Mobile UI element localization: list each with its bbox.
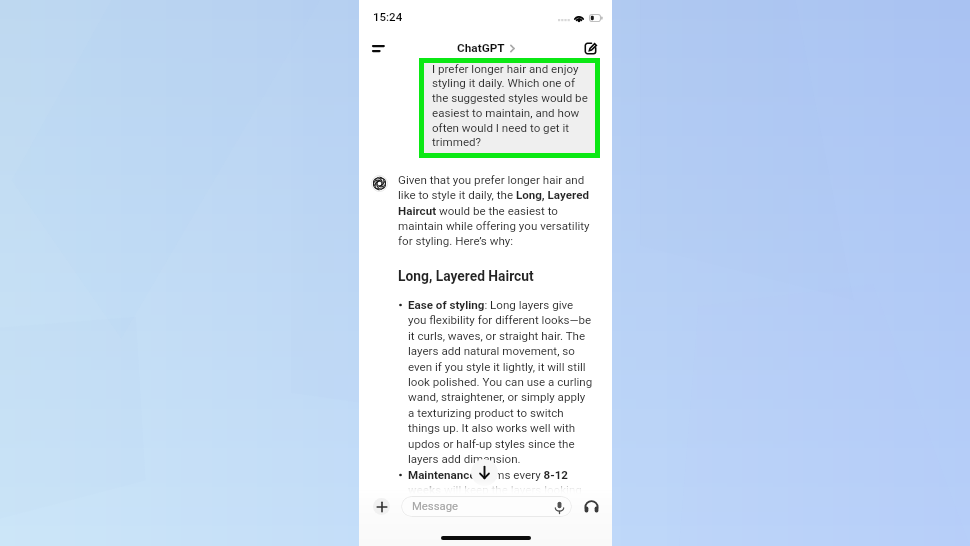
staticText: like to style it daily, the Long, Layere… — [398, 188, 589, 202]
staticText: styling it daily. Which one of — [432, 76, 575, 90]
staticText: Given that you prefer longer hair and — [398, 173, 585, 187]
staticText: look polished. You can use a curling — [408, 375, 593, 389]
staticText: Long, Layered Haircut — [398, 268, 534, 284]
staticText: Message — [412, 500, 458, 513]
staticText: often would I need to get it — [432, 121, 570, 135]
staticText: even if you style it lightly, it will st… — [408, 360, 586, 374]
staticText: it curls, waves, or straight hair. The — [408, 329, 586, 343]
staticText: fresh and — [408, 498, 457, 512]
staticText: layers add dimension. — [408, 452, 521, 466]
button[interactable]: Dictate message — [552, 500, 566, 514]
staticText: ChatGPT — [457, 41, 505, 55]
button[interactable]: Scroll to bottom — [471, 459, 498, 486]
staticText: for styling. Here’s why: — [398, 234, 514, 248]
staticText: the suggested styles would be — [432, 91, 588, 105]
staticText: easiest to maintain, and how — [432, 106, 580, 120]
staticText: maintain while offering you versatility — [398, 219, 590, 233]
staticText: trimmed? — [432, 135, 482, 149]
staticText: I prefer longer hair and enjoy — [432, 62, 579, 76]
staticText: 15:24 — [373, 10, 403, 23]
staticText: weeks will keep the layers looking — [408, 483, 582, 497]
staticText: Maintenance: Trims every 8-12 — [408, 468, 568, 482]
button[interactable]: Open sidebar menu — [364, 36, 391, 61]
staticText: Haircut would be the easiest to — [398, 204, 558, 218]
staticText: layers add natural movement, so — [408, 344, 575, 358]
button[interactable]: ChatGPT — [457, 41, 515, 55]
button[interactable]: Voice mode — [582, 497, 601, 516]
button[interactable]: Message — [401, 496, 572, 517]
button[interactable]: Add attachment — [373, 498, 390, 515]
button[interactable] — [424, 63, 595, 153]
staticText: updos or half-up styles since the — [408, 437, 575, 451]
staticText: Ease of styling: Long layers give — [408, 298, 574, 312]
button[interactable]: New chat — [577, 35, 604, 61]
staticText: a texturizing product to switch — [408, 406, 564, 420]
staticText: you flexibility for different looks—be — [408, 313, 592, 327]
staticText: things up. It also works well with — [408, 421, 576, 435]
staticText: wand, straightener, or simply apply — [408, 390, 586, 404]
